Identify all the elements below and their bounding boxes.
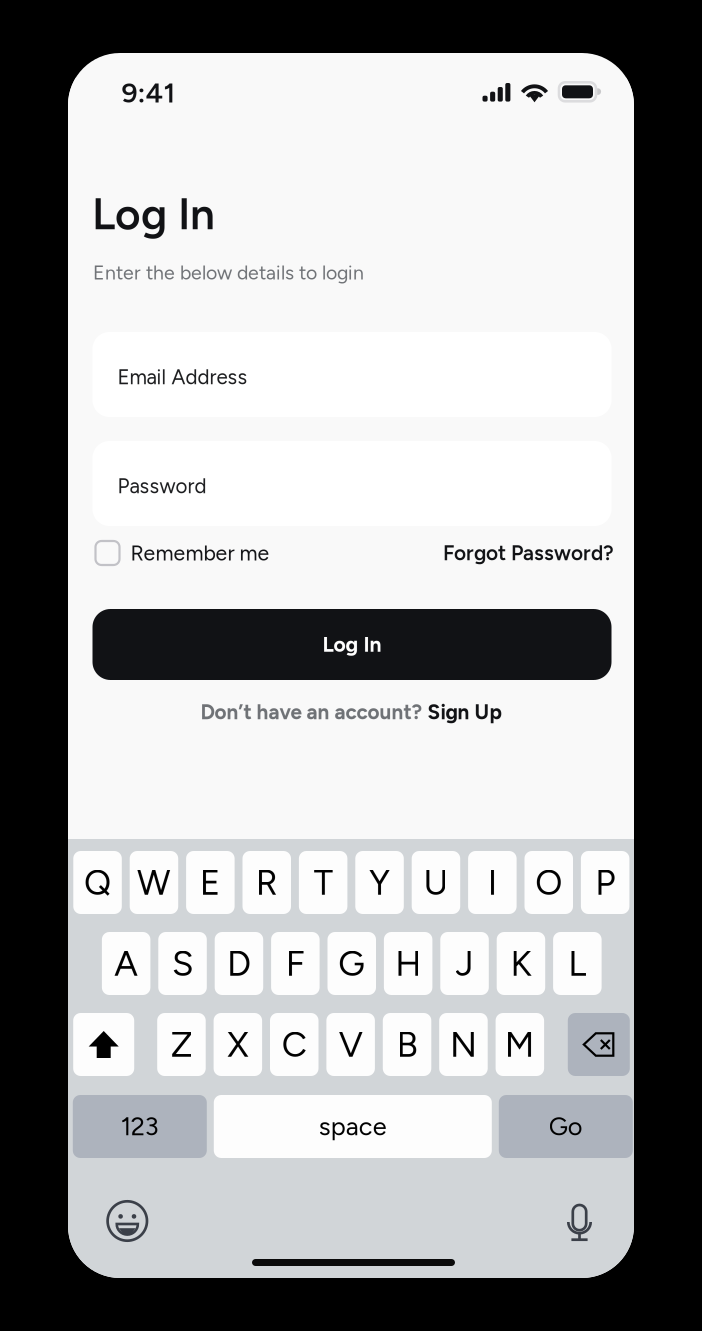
button[interactable]: I (468, 851, 517, 914)
staticText: B (396, 1023, 417, 1065)
button[interactable]: Y (355, 851, 404, 914)
button[interactable]: D (215, 932, 263, 995)
staticText: V (339, 1023, 363, 1065)
staticText: Don’t have an account? (200, 700, 427, 724)
staticText: L (568, 942, 586, 984)
button[interactable]: 123 (73, 1095, 207, 1158)
staticText: N (450, 1023, 477, 1065)
button[interactable]: T (299, 851, 347, 914)
staticText: Enter the below details to login (93, 261, 364, 284)
staticText: C (282, 1023, 307, 1065)
button[interactable]: Forgot Password? (442, 536, 614, 570)
button[interactable]: Shift (73, 1013, 134, 1076)
staticText: D (227, 942, 251, 984)
button[interactable]: V (326, 1013, 375, 1076)
button[interactable]: M (496, 1013, 544, 1076)
staticText: H (395, 942, 421, 984)
staticText: X (227, 1023, 248, 1065)
button[interactable]: Log In (92, 609, 611, 680)
button[interactable]: X (214, 1013, 262, 1076)
staticText: 123 (121, 1111, 159, 1142)
staticText: Log In (92, 187, 215, 240)
button[interactable]: Remember me (95, 536, 295, 570)
staticText: T (314, 861, 333, 903)
button[interactable]: G (327, 932, 376, 995)
button[interactable]: L (553, 932, 602, 995)
button[interactable]: K (497, 932, 545, 995)
staticText: F (286, 942, 305, 984)
staticText: Password (117, 474, 206, 498)
staticText: Email Address (117, 365, 247, 389)
button[interactable]: C (270, 1013, 318, 1076)
staticText: J (455, 942, 473, 984)
staticText: Z (170, 1023, 192, 1065)
staticText: K (510, 942, 531, 984)
staticText: R (256, 861, 278, 903)
staticText: Sign Up (427, 700, 501, 724)
button[interactable]: P (581, 851, 629, 914)
staticText: I (488, 861, 497, 903)
button[interactable]: Q (73, 851, 122, 914)
staticText: P (595, 861, 615, 903)
button[interactable]: Email Address (92, 332, 611, 417)
button[interactable]: U (412, 851, 460, 914)
button[interactable]: H (384, 932, 432, 995)
staticText: S (172, 942, 193, 984)
button[interactable]: J (440, 932, 489, 995)
button[interactable]: F (271, 932, 320, 995)
staticText: G (338, 942, 365, 984)
button[interactable]: Password (92, 441, 611, 526)
staticText: Forgot Password? (443, 540, 614, 565)
button[interactable]: E (186, 851, 235, 914)
button[interactable]: Go (499, 1095, 633, 1158)
staticText: 9:41 (121, 76, 175, 110)
button[interactable]: Dictation (566, 1203, 593, 1241)
button[interactable]: Emoji keyboard (106, 1200, 148, 1242)
button[interactable]: Don’t have an account? (92, 698, 610, 726)
button[interactable]: S (158, 932, 207, 995)
staticText: Y (369, 861, 390, 903)
staticText: M (505, 1023, 535, 1065)
button[interactable]: A (102, 932, 150, 995)
staticText: Remember me (130, 540, 269, 566)
button[interactable]: R (242, 851, 291, 914)
button[interactable]: W (130, 851, 178, 914)
staticText: Log In (322, 632, 381, 657)
button[interactable]: Delete (568, 1013, 630, 1076)
button[interactable]: Z (157, 1013, 206, 1076)
staticText: Q (84, 861, 111, 903)
button[interactable]: B (383, 1013, 431, 1076)
button[interactable]: N (439, 1013, 488, 1076)
staticText: A (114, 942, 138, 984)
staticText: Go (549, 1111, 583, 1142)
button[interactable]: space (214, 1095, 492, 1158)
button[interactable]: O (524, 851, 573, 914)
staticText: E (200, 861, 221, 903)
staticText: U (423, 861, 448, 903)
staticText: space (319, 1111, 387, 1142)
staticText: O (535, 861, 562, 903)
staticText: W (137, 861, 171, 903)
